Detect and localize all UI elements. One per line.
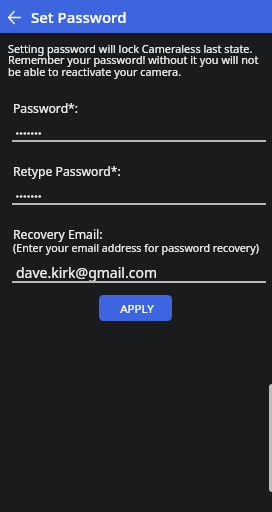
staticText: dave.kirk@gmail.com xyxy=(16,263,157,282)
staticText: Setting password will lock Cameraless la… xyxy=(8,41,266,79)
button[interactable]: APPLY xyxy=(99,295,172,321)
staticText: (Enter your email address for password r… xyxy=(13,241,259,256)
staticText: APPLY xyxy=(120,301,154,317)
button[interactable]: Back xyxy=(2,5,26,29)
staticText: Recovery Email: xyxy=(13,226,103,243)
staticText: Set Password xyxy=(31,7,127,27)
staticText: Retype Password*: xyxy=(13,163,121,180)
staticText: Password*: xyxy=(13,100,79,117)
